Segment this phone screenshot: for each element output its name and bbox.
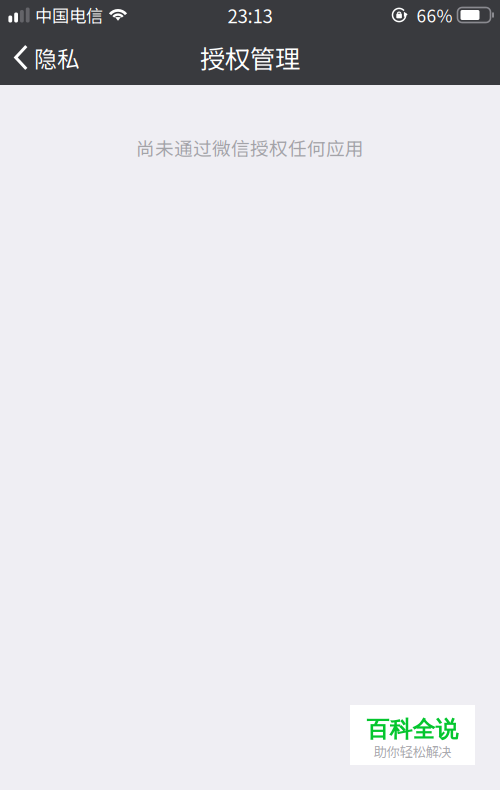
staticText: 授权管理 [200,39,300,76]
staticText: 隐私 [34,41,80,74]
staticText: 尚未通过微信授权任何应用 [136,134,364,161]
staticText: 中国电信 [35,2,103,28]
staticText: 23:13 [227,1,272,28]
button[interactable]: 返回隐私 [0,30,92,85]
staticText: 助你轻松解决 [373,742,451,761]
staticText: 66% [416,2,452,28]
staticText: 百科全说 [366,715,458,744]
